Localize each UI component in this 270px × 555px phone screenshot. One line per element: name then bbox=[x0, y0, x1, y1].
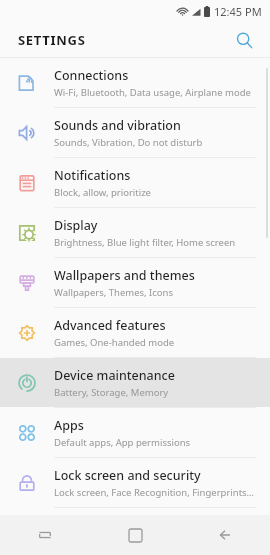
staticText: 12:45 PM bbox=[214, 4, 262, 19]
staticText: Brightness, Blue light filter, Home scre… bbox=[54, 236, 236, 249]
button[interactable]: Recents bbox=[0, 515, 90, 555]
button[interactable]: Lock screen and security bbox=[0, 458, 270, 507]
staticText: Wallpapers and themes bbox=[54, 267, 195, 284]
staticText: Battery, Storage, Memory bbox=[54, 386, 169, 399]
staticText: Lock screen and security bbox=[54, 467, 201, 484]
button[interactable]: Advanced features bbox=[0, 308, 270, 357]
staticText: SETTINGS bbox=[18, 31, 86, 49]
staticText: Wallpapers, Themes, Icons bbox=[54, 286, 174, 299]
staticText: Connections bbox=[54, 67, 129, 84]
button[interactable]: Device maintenance bbox=[0, 358, 270, 407]
button[interactable]: Display bbox=[0, 208, 270, 257]
staticText: Advanced features bbox=[54, 317, 166, 334]
staticText: Block, allow, prioritize bbox=[54, 186, 151, 199]
button[interactable]: Sounds and vibration bbox=[0, 108, 270, 157]
staticText: Default apps, App permissions bbox=[54, 436, 191, 449]
button[interactable]: Connections bbox=[0, 58, 270, 107]
staticText: Apps bbox=[54, 417, 84, 434]
button[interactable]: Home bbox=[90, 515, 180, 555]
staticText: Display bbox=[54, 217, 98, 234]
staticText: Device maintenance bbox=[54, 367, 175, 384]
staticText: Games, One-handed mode bbox=[54, 336, 175, 349]
button[interactable]: Notifications bbox=[0, 158, 270, 207]
staticText: Notifications bbox=[54, 167, 131, 184]
button[interactable]: Wallpapers and themes bbox=[0, 258, 270, 307]
staticText: Lock screen, Face Recognition, Fingerpri… bbox=[54, 486, 255, 499]
button[interactable]: Search bbox=[230, 26, 258, 54]
staticText: Sounds, Vibration, Do not disturb bbox=[54, 136, 203, 149]
staticText: Wi-Fi, Bluetooth, Data usage, Airplane m… bbox=[54, 86, 251, 99]
button[interactable]: Apps bbox=[0, 408, 270, 457]
button[interactable]: Back bbox=[180, 515, 270, 555]
staticText: Sounds and vibration bbox=[54, 117, 181, 134]
